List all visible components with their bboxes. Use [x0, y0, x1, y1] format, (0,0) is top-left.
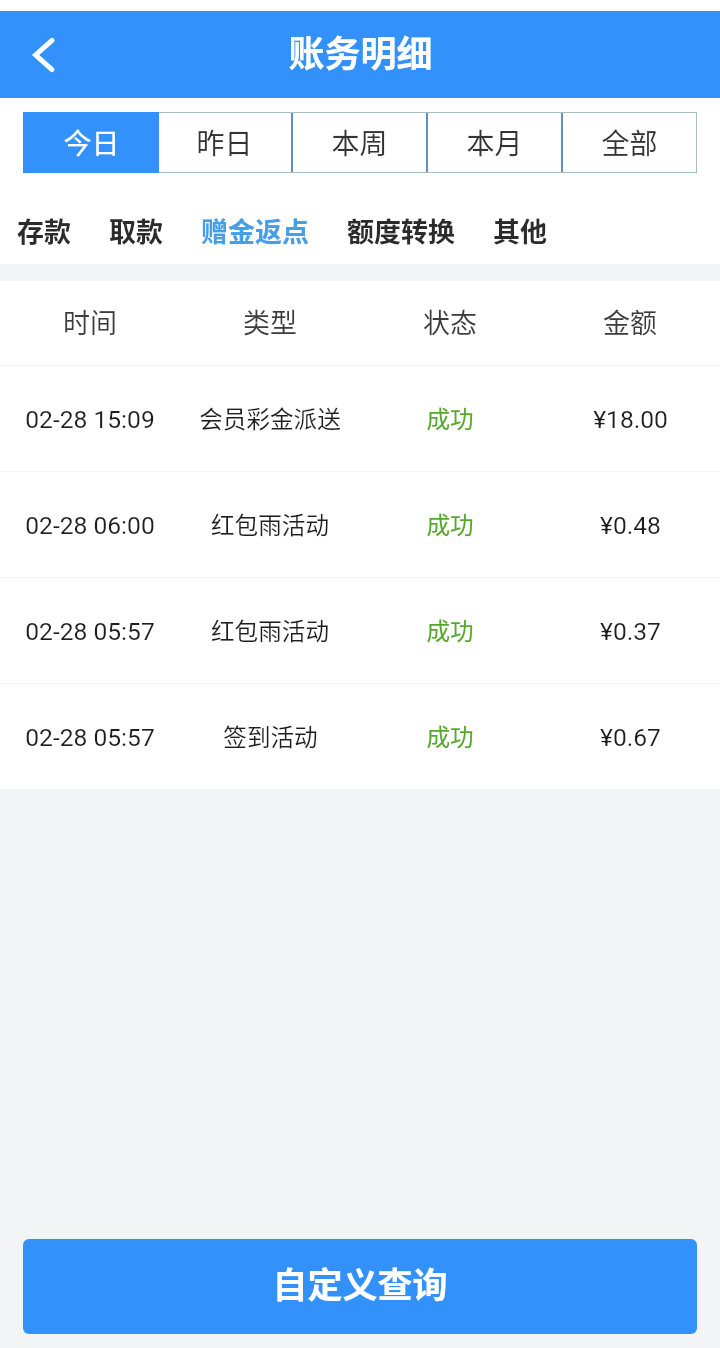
staticText: 02-28 05:57	[25, 617, 155, 646]
button[interactable]: 02-28 15:09	[0, 365, 720, 471]
staticText: 02-28 05:57	[25, 723, 155, 752]
button[interactable]: 02-28 05:57	[0, 577, 720, 683]
staticText: 签到活动	[223, 719, 318, 753]
staticText: 红包雨活动	[211, 507, 329, 541]
staticText: 成功	[426, 507, 474, 541]
staticText: 02-28 15:09	[25, 405, 155, 434]
button[interactable]: 02-28 05:57	[0, 683, 720, 789]
staticText: 类型	[243, 302, 297, 341]
button[interactable]: Back	[25, 33, 55, 77]
staticText: 昨日	[196, 122, 253, 163]
button[interactable]: 昨日	[158, 113, 291, 172]
staticText: 本周	[331, 122, 388, 163]
button[interactable]: 本月	[428, 113, 561, 172]
button[interactable]: 额度转换	[347, 185, 455, 276]
button[interactable]: 自定义查询	[23, 1239, 697, 1334]
staticText: 红包雨活动	[211, 613, 329, 647]
staticText: 02-28 06:00	[25, 511, 155, 540]
staticText: 成功	[426, 719, 474, 753]
staticText: 本月	[466, 122, 523, 163]
button[interactable]: 02-28 06:00	[0, 471, 720, 577]
button[interactable]: 赠金返点	[201, 185, 309, 276]
staticText: ¥0.67	[600, 723, 661, 752]
staticText: 赠金返点	[201, 211, 309, 250]
staticText: ¥0.48	[600, 511, 661, 540]
staticText: 全部	[601, 122, 658, 163]
staticText: 今日	[63, 122, 120, 163]
staticText: 会员彩金派送	[199, 401, 341, 435]
staticText: 额度转换	[347, 211, 455, 250]
button[interactable]: 本周	[293, 113, 426, 172]
staticText: 取款	[109, 211, 163, 250]
button[interactable]: 其他	[493, 185, 547, 276]
staticText: 状态	[423, 302, 477, 341]
staticText: 成功	[426, 401, 474, 435]
staticText: 成功	[426, 613, 474, 647]
staticText: ¥0.37	[600, 617, 661, 646]
staticText: 金额	[603, 302, 657, 341]
staticText: 自定义查询	[272, 1257, 448, 1308]
staticText: 时间	[63, 302, 117, 341]
button[interactable]: 取款	[109, 185, 163, 276]
staticText: ¥18.00	[593, 405, 668, 434]
button[interactable]: 今日	[23, 112, 159, 173]
staticText: 其他	[493, 211, 547, 250]
button[interactable]: 存款	[17, 185, 71, 276]
staticText: 存款	[17, 211, 71, 250]
staticText: 账务明细	[288, 25, 433, 77]
button[interactable]: 全部	[563, 113, 696, 172]
